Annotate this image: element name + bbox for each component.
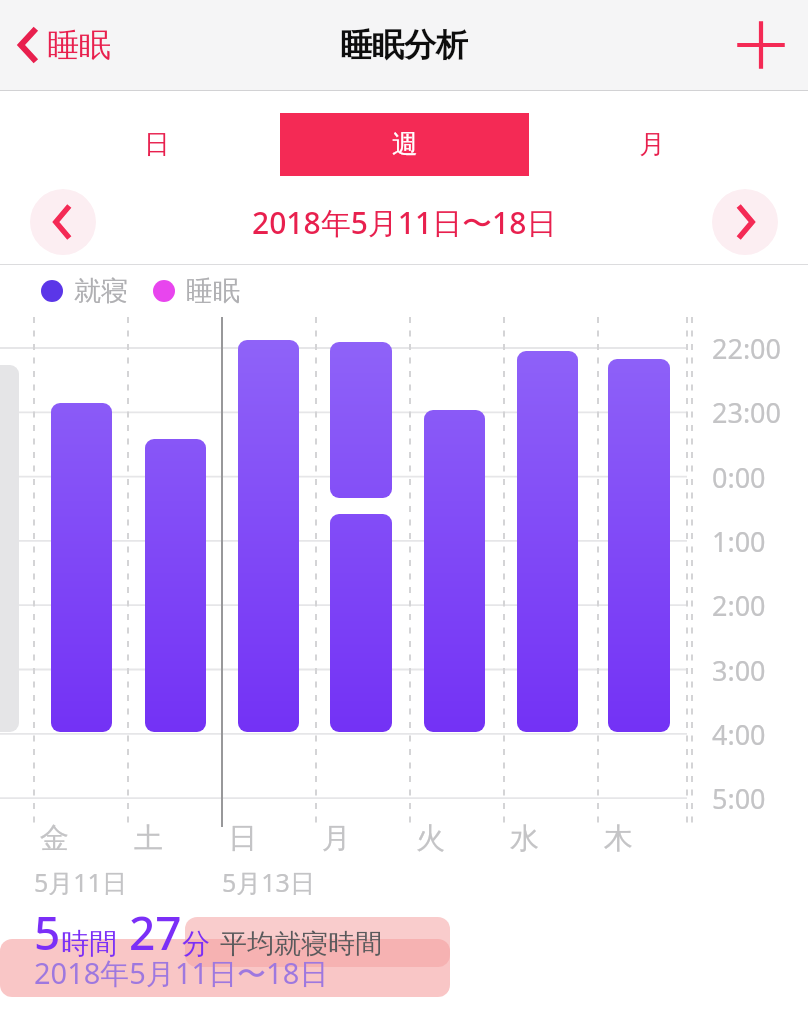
staticText: 就寝 (74, 274, 128, 308)
staticText: 月 (322, 820, 351, 857)
staticText: 睡眠分析 (340, 25, 468, 65)
staticText: 23:00 (712, 394, 782, 431)
staticText: 睡眠 (186, 274, 240, 308)
button[interactable]: 睡眠 (10, 17, 119, 73)
staticText: 月 (639, 128, 665, 161)
button[interactable]: 週 (282, 113, 527, 176)
button[interactable]: Add (734, 18, 788, 72)
staticText: 0:00 (712, 459, 766, 496)
button[interactable]: Next week (712, 189, 778, 255)
button[interactable]: Previous week (30, 189, 96, 255)
staticText: 4:00 (712, 716, 766, 753)
staticText: 22:00 (712, 330, 782, 367)
button[interactable]: 日 (34, 113, 280, 176)
staticText: 週 (392, 128, 418, 161)
staticText: 日 (228, 820, 257, 857)
staticText: 睡眠 (47, 25, 111, 65)
button[interactable]: 月 (529, 113, 774, 176)
staticText: 5 (34, 901, 61, 964)
staticText: 2018年5月11日〜18日 (34, 953, 329, 993)
staticText: 時間 (61, 926, 117, 961)
staticText: 土 (134, 820, 163, 857)
staticText: 1:00 (712, 523, 766, 560)
staticText: 2:00 (712, 587, 766, 624)
staticText: 火 (416, 820, 445, 857)
staticText: 5:00 (712, 780, 766, 817)
staticText: 3:00 (712, 652, 766, 689)
staticText: 5月11日 (34, 865, 127, 895)
staticText: 日 (144, 128, 170, 161)
staticText: 分 (182, 926, 210, 961)
staticText: 5月13日 (222, 865, 315, 895)
staticText: 平均就寝時間 (220, 927, 382, 961)
staticText: 2018年5月11日〜18日 (252, 202, 557, 243)
staticText: 水 (510, 820, 539, 857)
staticText: 木 (604, 820, 633, 857)
staticText: 27 (129, 901, 182, 964)
staticText: 金 (40, 820, 69, 857)
